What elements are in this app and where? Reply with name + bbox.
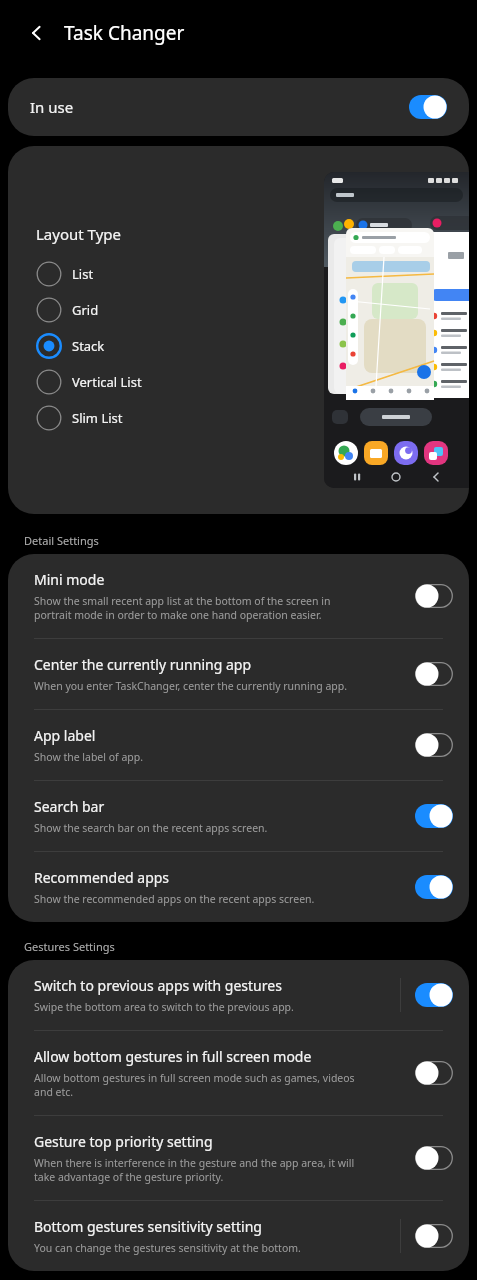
staticText: Switch to previous apps with gestures — [34, 976, 282, 995]
button[interactable]: Mini mode — [8, 554, 469, 638]
button[interactable]: Recommended apps — [8, 852, 469, 922]
staticText: Slim List — [72, 409, 123, 427]
button[interactable]: Grid — [36, 292, 111, 328]
button[interactable]: List — [36, 256, 106, 292]
staticText: Task Changer — [64, 20, 185, 46]
button[interactable]: Switch to previous apps with gestures — [8, 960, 469, 1030]
button[interactable]: Toggle off — [415, 662, 453, 686]
button[interactable]: Toggle off — [415, 1224, 453, 1248]
button[interactable]: Slim List — [36, 400, 135, 436]
button[interactable]: Toggle off — [415, 1061, 453, 1085]
staticText: Detail Settings — [24, 533, 99, 548]
button[interactable]: Toggle off — [415, 584, 453, 608]
staticText: List — [72, 265, 94, 283]
staticText: Show the search bar on the recent apps s… — [34, 821, 268, 835]
button[interactable]: Vertical List — [36, 364, 154, 400]
button[interactable]: Toggle off — [415, 733, 453, 757]
staticText: Gesture top priority setting — [34, 1132, 213, 1151]
staticText: Layout Type — [36, 224, 121, 244]
staticText: When you enter TaskChanger, center the c… — [34, 679, 348, 693]
staticText: Grid — [72, 301, 99, 319]
button[interactable]: Toggle off — [415, 1146, 453, 1170]
button[interactable]: Stack — [36, 328, 117, 364]
staticText: Search bar — [34, 797, 105, 816]
button[interactable]: In use — [8, 78, 469, 136]
staticText: App label — [34, 726, 96, 745]
button[interactable]: Toggle on — [415, 983, 453, 1007]
staticText: Vertical List — [72, 373, 142, 391]
staticText: Show the label of app. — [34, 750, 144, 764]
staticText: Swipe the bottom area to switch to the p… — [34, 1000, 294, 1014]
button[interactable]: Back — [16, 12, 58, 54]
staticText: Allow bottom gestures in full screen mod… — [34, 1071, 355, 1099]
button[interactable]: Gesture top priority setting — [8, 1116, 469, 1200]
staticText: Bottom gestures sensitivity setting — [34, 1217, 262, 1236]
button[interactable]: Toggle on — [409, 95, 447, 119]
staticText: Allow bottom gestures in full screen mod… — [34, 1047, 312, 1066]
staticText: You can change the gestures sensitivity … — [34, 1241, 301, 1255]
staticText: Center the currently running app — [34, 655, 251, 674]
button[interactable]: Allow bottom gestures in full screen mod… — [8, 1031, 469, 1115]
button[interactable]: Search bar — [8, 781, 469, 851]
staticText: Show the recommended apps on the recent … — [34, 892, 315, 906]
staticText: In use — [30, 97, 409, 117]
staticText: Show the small recent app list at the bo… — [34, 594, 331, 622]
button[interactable]: Bottom gestures sensitivity setting — [8, 1201, 469, 1271]
staticText: Recommended apps — [34, 868, 170, 887]
staticText: Gestures Settings — [24, 939, 115, 954]
button[interactable]: App label — [8, 710, 469, 780]
button[interactable]: Toggle on — [415, 804, 453, 828]
button[interactable]: Toggle on — [415, 875, 453, 899]
staticText: Stack — [72, 337, 105, 355]
staticText: When there is interference in the gestur… — [34, 1156, 355, 1184]
staticText: Mini mode — [34, 570, 105, 589]
button[interactable]: Center the currently running app — [8, 639, 469, 709]
